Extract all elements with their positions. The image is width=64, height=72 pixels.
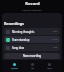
staticText: New recording [23,54,42,58]
staticText: Mic [31,67,35,70]
staticText: More [47,67,52,70]
staticText: VOICE MEMOS [22,8,42,11]
staticText: Record [25,1,40,7]
button[interactable]: New recording [4,53,60,59]
button[interactable]: Morning thoughts [4,28,60,35]
staticText: 1:08 [53,46,58,49]
button[interactable]: More [44,60,55,72]
staticText: Team standup [12,38,53,42]
staticText: 3:15 [53,38,58,41]
staticText: Memos [11,67,18,70]
staticText: 0:42 [53,30,58,33]
staticText: Recordings [4,21,24,26]
button[interactable]: Team standup [4,36,60,43]
staticText: Morning thoughts [12,30,53,34]
button[interactable]: Song idea [4,44,60,51]
button[interactable]: Memos [9,60,20,72]
button[interactable]: Mic [27,60,38,72]
staticText: Song idea [12,46,53,50]
